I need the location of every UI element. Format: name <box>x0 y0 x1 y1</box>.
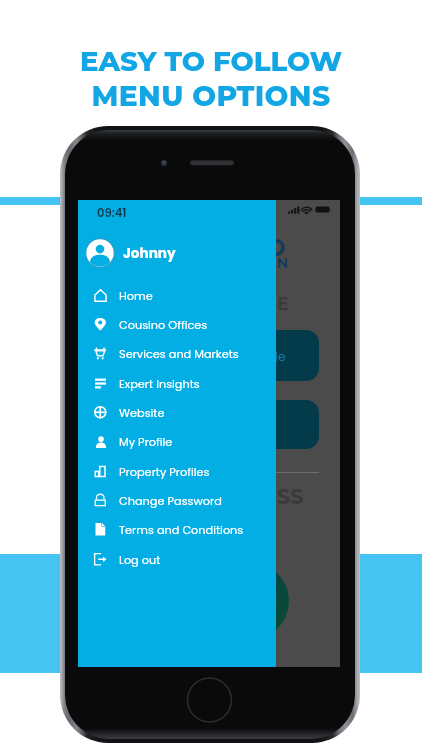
button[interactable]: Website <box>78 398 276 427</box>
staticText: Services and Markets <box>119 346 239 362</box>
button[interactable]: Home <box>78 281 276 310</box>
button[interactable]: Terms and Conditions <box>78 515 276 544</box>
staticText: CREATE ACCESS <box>124 484 304 510</box>
staticText: MENU OPTIONS <box>0 79 422 113</box>
staticText: Cousino Offices <box>119 317 208 333</box>
staticText: 09:41 <box>97 205 127 221</box>
staticText: Change Password <box>119 493 222 509</box>
staticText: Guest Mode <box>208 347 286 365</box>
staticText: Property Profiles <box>119 464 210 480</box>
staticText: Johnny <box>123 244 176 263</box>
button[interactable]: Property Profiles <box>78 457 276 486</box>
staticText: Website <box>119 405 165 421</box>
staticText: Expert Insights <box>119 376 200 392</box>
staticText: Log out <box>119 552 161 568</box>
button[interactable]: Login <box>174 400 319 449</box>
button[interactable]: Johnny <box>78 238 276 268</box>
staticText: EASY TO FOLLOW <box>0 44 422 78</box>
staticText: Home <box>119 288 153 304</box>
staticText: COUSINO <box>172 234 286 262</box>
button[interactable]: Guest Mode <box>174 330 319 381</box>
button[interactable]: Cousino Offices <box>78 310 276 339</box>
button[interactable]: Expert Insights <box>78 369 276 398</box>
staticText: My Profile <box>119 434 173 450</box>
button[interactable]: Change Password <box>78 486 276 515</box>
button[interactable]: My Profile <box>78 427 276 456</box>
staticText: Terms and Conditions <box>119 522 244 538</box>
button[interactable]: Log out <box>78 545 276 574</box>
staticText: PLEASE CHOOSE <box>135 293 289 314</box>
button[interactable]: Services and Markets <box>78 339 276 368</box>
staticText: VALUATION <box>198 254 289 271</box>
